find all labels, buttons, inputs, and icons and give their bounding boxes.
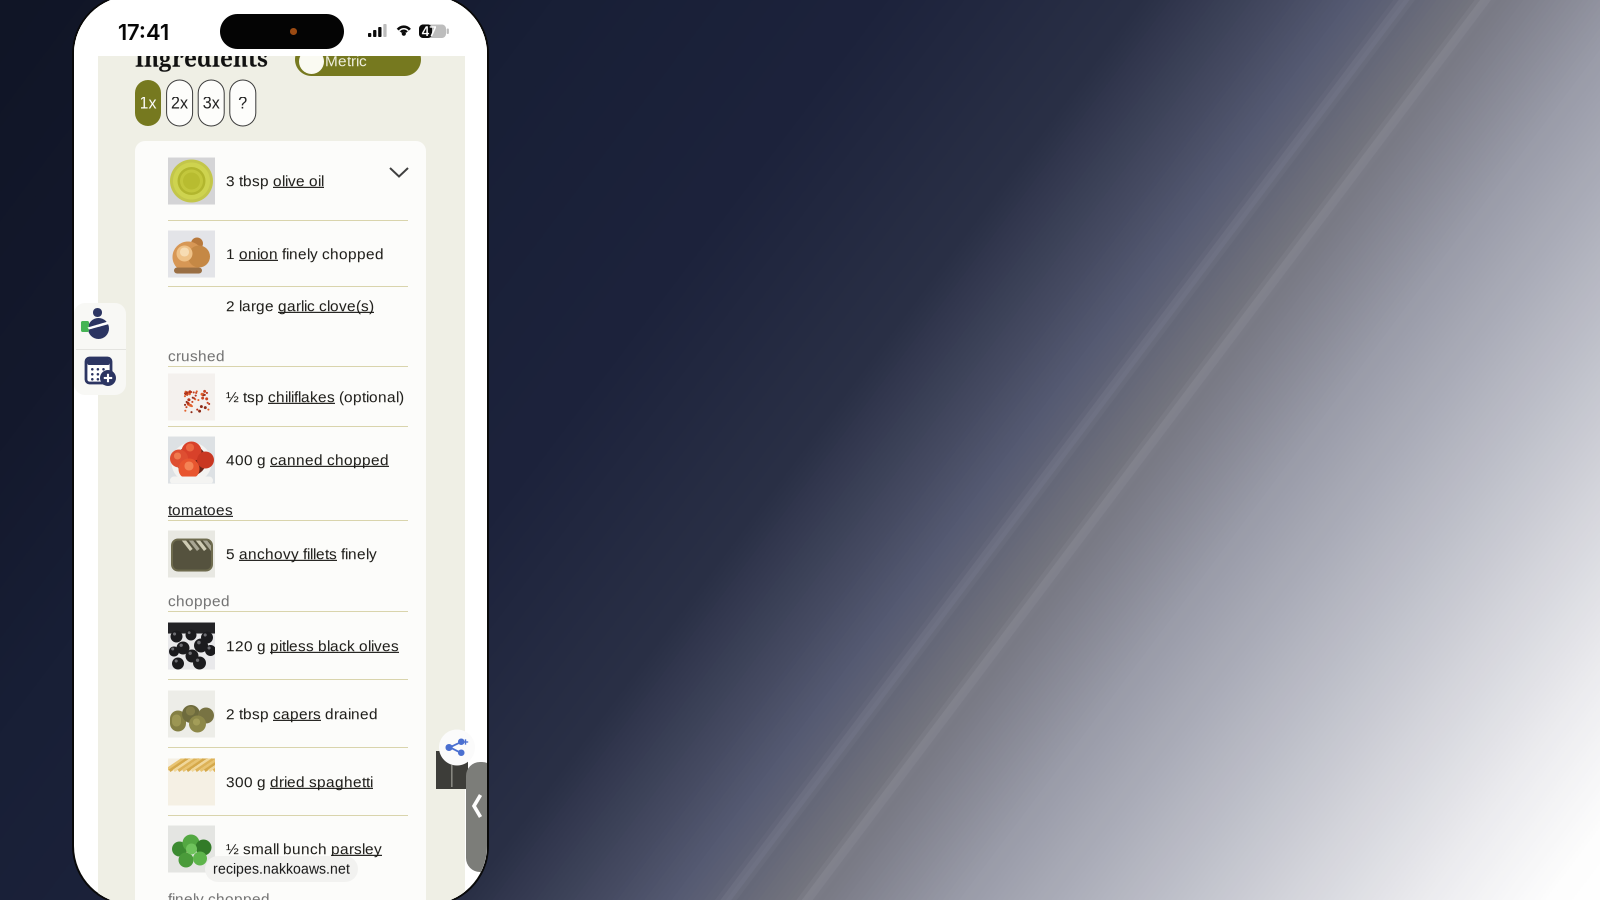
button[interactable]: 3x bbox=[198, 80, 224, 126]
button[interactable]: Metric bbox=[0, 0, 413, 900]
staticText: finely chopped bbox=[168, 890, 270, 900]
staticText: 3 tbsp olive oil bbox=[226, 172, 324, 189]
button[interactable]: recipes.nakkoaws.net bbox=[0, 0, 413, 900]
staticText: 2x bbox=[171, 94, 188, 112]
staticText: Metric bbox=[325, 52, 367, 69]
button[interactable]: Cooking mode bbox=[80, 307, 122, 347]
staticText: 2 large garlic clove(s) bbox=[226, 297, 374, 314]
button[interactable]: ? bbox=[230, 80, 256, 126]
staticText: 120 g pitless black olives bbox=[226, 637, 399, 654]
staticText: crushed bbox=[168, 347, 225, 364]
staticText: chopped bbox=[168, 592, 230, 609]
staticText: 3x bbox=[203, 94, 220, 112]
staticText: ? bbox=[238, 94, 247, 112]
staticText: 5 anchovy fillets finely bbox=[226, 545, 377, 562]
staticText: 300 g dried spaghetti bbox=[226, 773, 373, 790]
staticText: recipes.nakkoaws.net bbox=[213, 861, 350, 877]
button[interactable]: Add to meal plan bbox=[80, 353, 122, 393]
button[interactable]: Share bbox=[439, 729, 475, 766]
staticText: 1x bbox=[139, 94, 156, 112]
button[interactable]: Collapse ingredient list bbox=[388, 164, 410, 180]
staticText: 17:41 bbox=[118, 19, 169, 45]
staticText: ½ small bunch parsley bbox=[226, 840, 382, 857]
staticText: Ingredients bbox=[135, 43, 268, 73]
button[interactable]: Previous tab bbox=[472, 793, 482, 819]
staticText: ½ tsp chiliflakes (optional) bbox=[226, 388, 404, 405]
button[interactable]: 2x bbox=[167, 80, 193, 126]
staticText: 1 onion finely chopped bbox=[226, 245, 384, 262]
staticText: 47 bbox=[421, 24, 436, 39]
button[interactable]: 1x bbox=[135, 80, 161, 126]
staticText: 400 g canned chopped bbox=[226, 451, 389, 468]
staticText: 2 tbsp capers drained bbox=[226, 705, 378, 722]
staticText: tomatoes bbox=[168, 501, 233, 518]
